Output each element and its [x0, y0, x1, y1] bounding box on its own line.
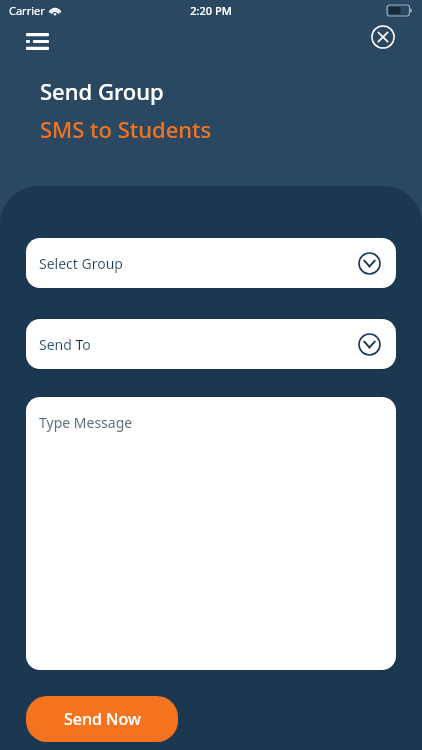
- staticText: Type Message: [39, 413, 133, 432]
- button[interactable]: Send To: [26, 319, 396, 369]
- button[interactable]: Select Group: [26, 238, 396, 288]
- staticText: Send To: [39, 335, 91, 354]
- other: Expand Select Group: [356, 250, 382, 276]
- button[interactable]: Close: [366, 20, 400, 54]
- staticText: SMS to Students: [40, 114, 212, 144]
- button[interactable]: Send Now: [26, 696, 178, 742]
- staticText: Send Now: [64, 708, 141, 730]
- button[interactable]: Type Message: [26, 397, 396, 670]
- other: Expand Send To: [356, 331, 382, 357]
- button[interactable]: Menu: [20, 24, 54, 58]
- staticText: Send Group: [40, 76, 164, 106]
- staticText: Carrier: [9, 3, 45, 18]
- staticText: 2:20 PM: [190, 3, 232, 18]
- staticText: Select Group: [39, 254, 123, 273]
